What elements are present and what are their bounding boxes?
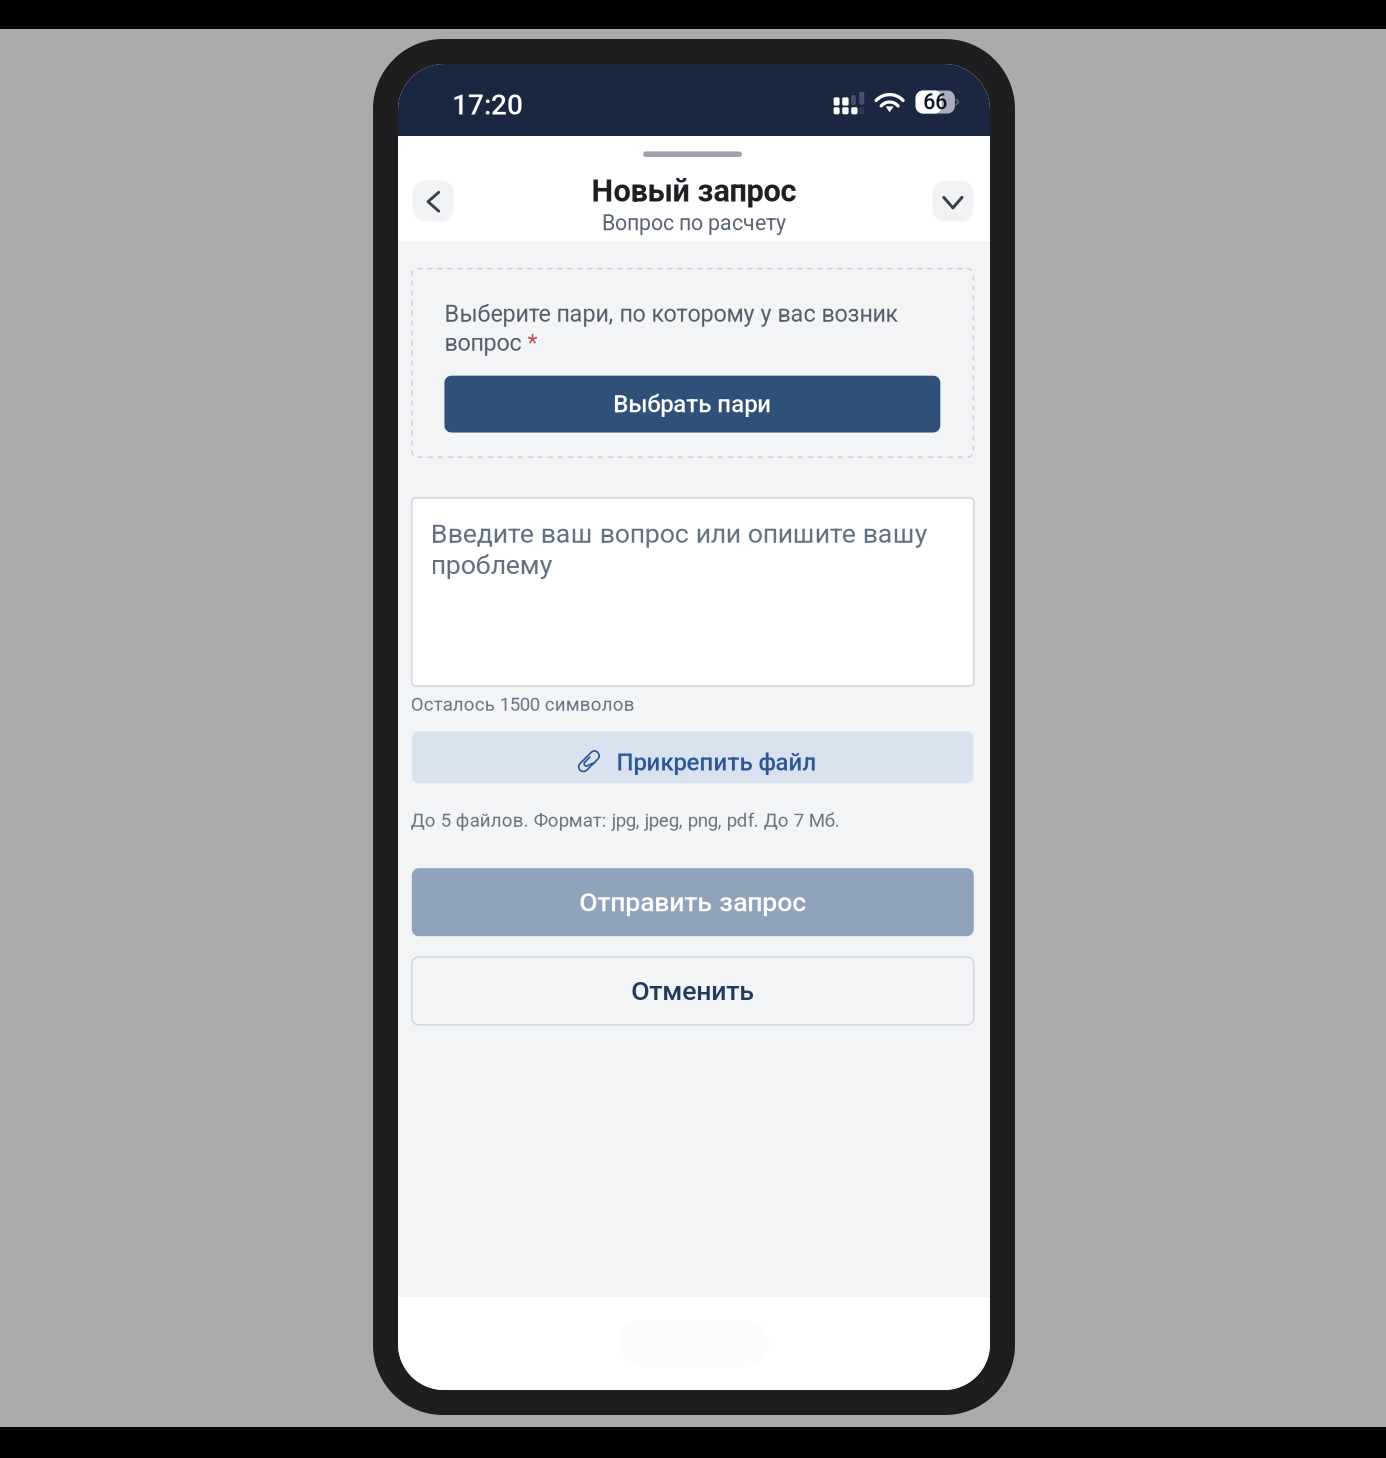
- staticText: 66: [923, 89, 947, 114]
- button[interactable]: Назад: [413, 180, 454, 221]
- staticText: Отменить: [631, 975, 754, 1007]
- staticText: Отправить запрос: [579, 887, 806, 918]
- button[interactable]: Прикрепить файл: [412, 731, 973, 783]
- button[interactable]: Свернуть: [932, 181, 973, 222]
- button[interactable]: Отменить: [412, 957, 974, 1025]
- button[interactable]: Отправить запрос: [412, 868, 974, 936]
- staticText: Выбрать пари: [613, 390, 771, 418]
- staticText: Новый запрос: [591, 173, 796, 209]
- staticText: *: [521, 329, 537, 356]
- staticText: вопрос: [444, 329, 521, 356]
- button[interactable]: Выбрать пари: [444, 376, 940, 432]
- staticText: Введите ваш вопрос или опишите вашу проб…: [431, 518, 928, 580]
- staticText: Прикрепить файл: [617, 748, 817, 776]
- staticText: Вопрос по расчету: [602, 210, 786, 235]
- staticText: Осталось 1500 символов: [411, 693, 635, 715]
- staticText: Выберите пари, по которому у вас возник: [444, 300, 898, 327]
- staticText: 17:20: [452, 89, 523, 121]
- staticText: До 5 файлов. Формат: jpg, jpeg, png, pdf…: [411, 809, 840, 831]
